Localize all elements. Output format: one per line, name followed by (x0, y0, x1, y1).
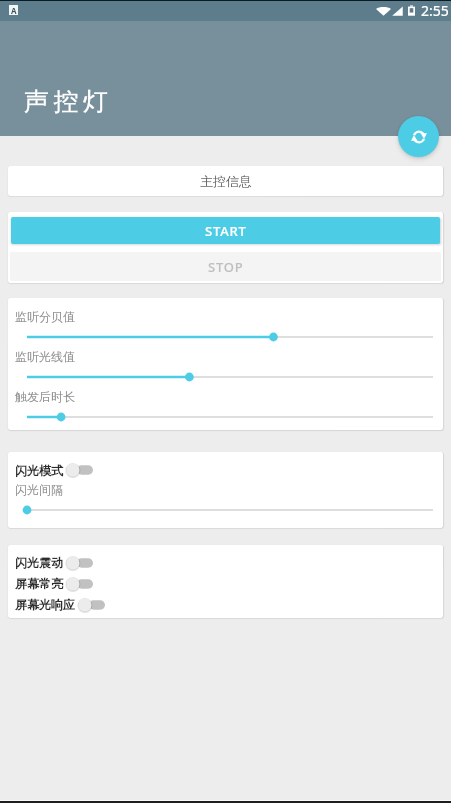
staticText: A (11, 5, 17, 15)
button[interactable]: Toggle (66, 462, 93, 478)
staticText: 声控灯 (24, 86, 113, 117)
button[interactable]: START (11, 217, 440, 244)
button[interactable]: STOP (10, 252, 441, 281)
staticText: 屏幕常亮 (15, 576, 63, 591)
button[interactable]: Toggle (66, 555, 93, 571)
button[interactable]: Toggle (78, 597, 105, 613)
staticText: 闪光震动 (15, 555, 63, 570)
staticText: 监听分贝值 (15, 309, 75, 324)
staticText: START (205, 222, 247, 240)
staticText: 触发后时长 (15, 389, 75, 404)
button[interactable]: 主控信息 (8, 166, 443, 196)
button[interactable]: Refresh (398, 116, 439, 157)
staticText: 屏幕光响应 (15, 597, 75, 612)
staticText: 主控信息 (200, 173, 252, 189)
staticText: STOP (208, 258, 244, 276)
staticText: 2:55 (421, 1, 449, 20)
button[interactable]: Toggle (66, 576, 93, 592)
staticText: 闪光模式 (15, 463, 63, 478)
staticText: 闪光间隔 (15, 482, 63, 497)
staticText: 监听光线值 (15, 349, 75, 364)
